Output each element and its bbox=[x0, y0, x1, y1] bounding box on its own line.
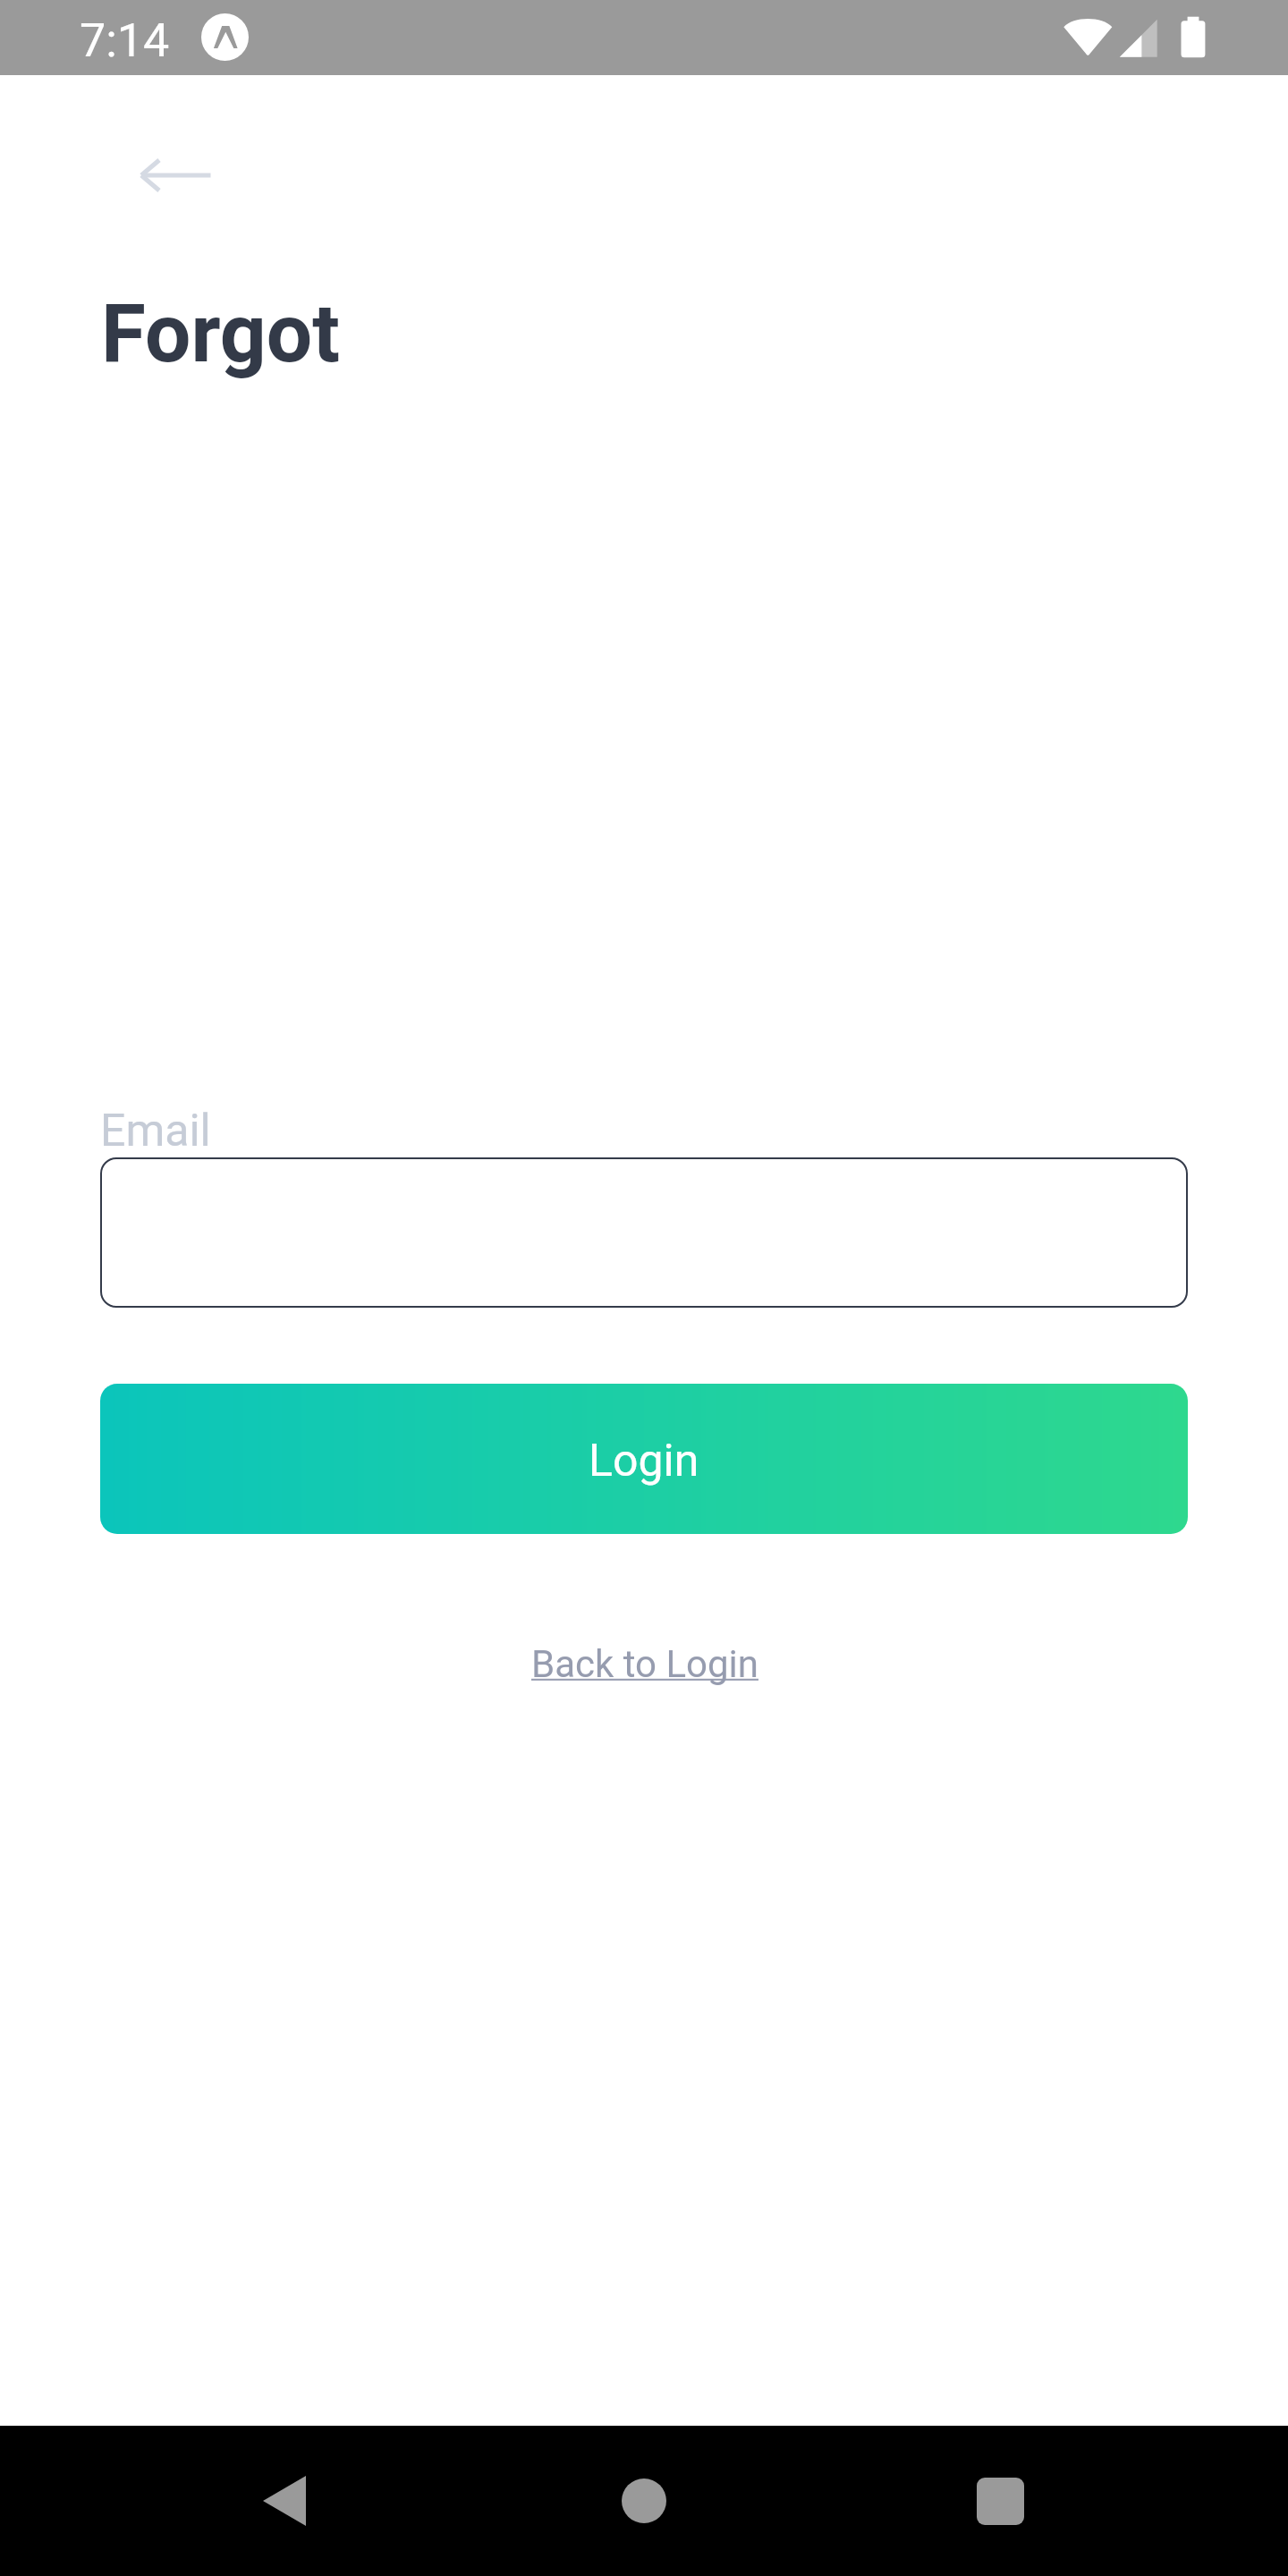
staticText: Back to Login bbox=[531, 1642, 758, 1686]
button[interactable]: Home bbox=[601, 2458, 687, 2544]
staticText: Forgot bbox=[101, 286, 341, 382]
button[interactable]: Back bbox=[120, 134, 231, 216]
staticText: Email bbox=[100, 1105, 211, 1157]
button[interactable]: Recent apps bbox=[957, 2458, 1043, 2544]
button[interactable]: Back bbox=[241, 2458, 327, 2544]
staticText: Login bbox=[589, 1435, 699, 1487]
button[interactable]: Login bbox=[100, 1384, 1188, 1534]
staticText: 7:14 bbox=[80, 13, 170, 68]
button[interactable]: Back to Login bbox=[531, 1642, 758, 1686]
button[interactable]: Email input field bbox=[100, 1157, 1188, 1308]
